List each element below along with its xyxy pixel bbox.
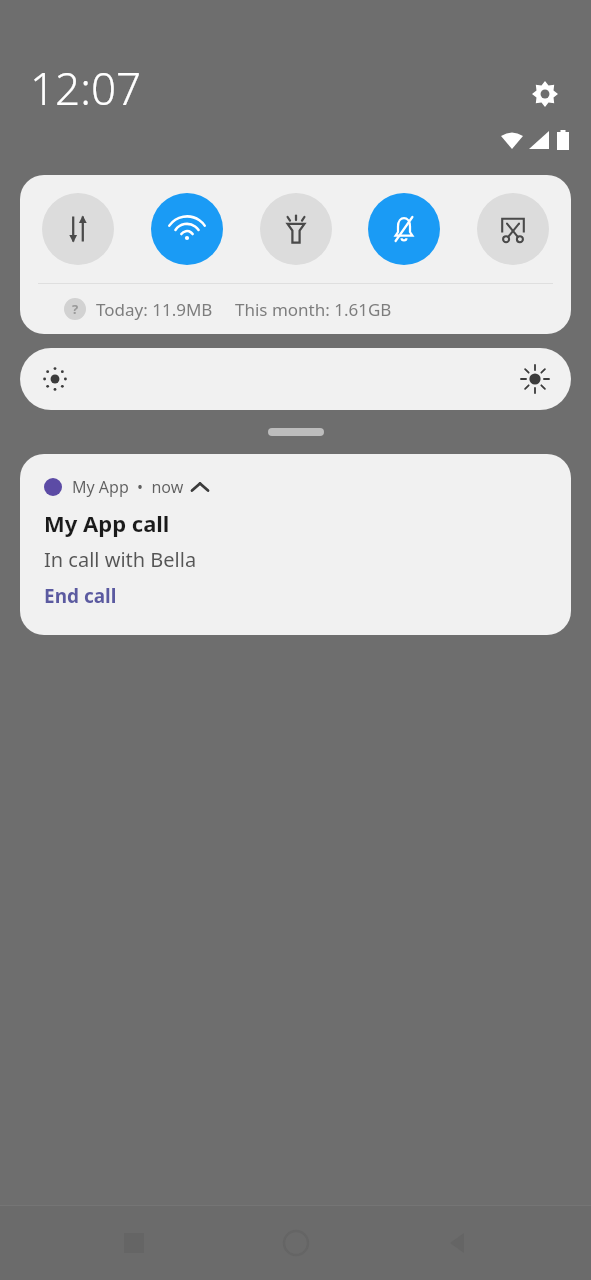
staticText: My App • now — [72, 476, 184, 498]
staticText: Today: 11.9MB — [96, 298, 213, 321]
staticText: 12:07 — [30, 58, 142, 118]
button[interactable]: My App • now — [20, 454, 571, 635]
button[interactable]: Mobile data — [42, 193, 114, 265]
staticText: ? — [72, 300, 79, 318]
button[interactable]: Settings — [525, 74, 565, 114]
button[interactable]: End call — [44, 583, 117, 609]
staticText: My App call — [44, 508, 170, 538]
button[interactable]: Expand — [268, 428, 324, 436]
button[interactable]: Screenshot — [477, 193, 549, 265]
button[interactable]: Brightness — [20, 348, 571, 410]
button[interactable]: ? — [20, 284, 571, 334]
button[interactable]: Flashlight — [260, 193, 332, 265]
button[interactable]: Do not disturb — [368, 193, 440, 265]
staticText: End call — [44, 583, 117, 609]
staticText: This month: 1.61GB — [235, 298, 392, 321]
button[interactable]: Wi-Fi — [151, 193, 223, 265]
staticText: In call with Bella — [44, 546, 197, 573]
